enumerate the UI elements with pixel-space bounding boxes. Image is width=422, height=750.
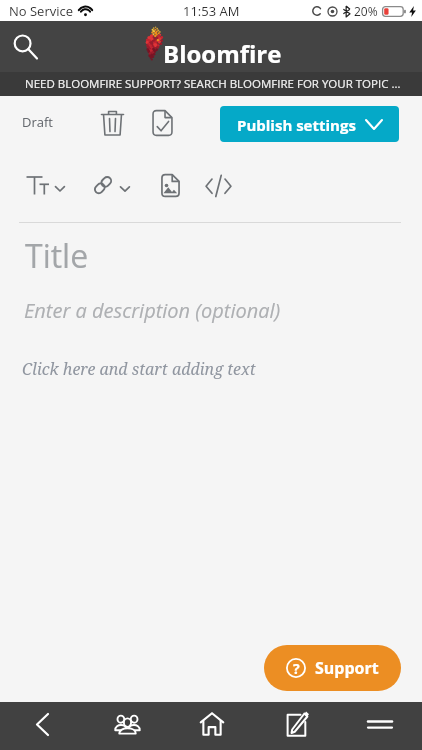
button[interactable]: New post — [254, 702, 338, 750]
button[interactable]: Insert image — [152, 170, 188, 200]
staticText: Draft — [22, 113, 53, 131]
button[interactable]: ? — [264, 645, 401, 691]
button[interactable]: Delete — [95, 105, 130, 140]
button[interactable]: NEED BLOOMFIRE SUPPORT? SEARCH BLOOMFIRE… — [0, 72, 422, 96]
button[interactable]: Home — [170, 702, 254, 750]
button[interactable]: Back — [0, 702, 85, 750]
staticText: Click here and start adding text — [22, 358, 256, 380]
staticText: NEED BLOOMFIRE SUPPORT? SEARCH BLOOMFIRE… — [25, 76, 401, 92]
staticText: Publish settings — [237, 115, 356, 135]
staticText: Bloomfire — [163, 37, 282, 70]
staticText: Enter a description (optional) — [24, 297, 281, 324]
staticText: 11:53 AM — [183, 2, 240, 20]
staticText: 20% — [354, 3, 378, 19]
button[interactable]: Publish settings — [220, 106, 399, 142]
button[interactable]: Insert link — [88, 170, 136, 200]
staticText: No Service — [9, 2, 74, 20]
button[interactable]: Search — [4, 21, 44, 72]
button[interactable]: People — [85, 702, 170, 750]
staticText: Title — [25, 234, 89, 278]
staticText: Support — [315, 657, 379, 679]
staticText: ? — [293, 659, 300, 678]
button[interactable]: Insert code — [198, 170, 238, 200]
button[interactable]: Menu — [338, 702, 422, 750]
button[interactable]: Text style — [20, 170, 70, 200]
button[interactable]: Save draft — [145, 105, 180, 140]
